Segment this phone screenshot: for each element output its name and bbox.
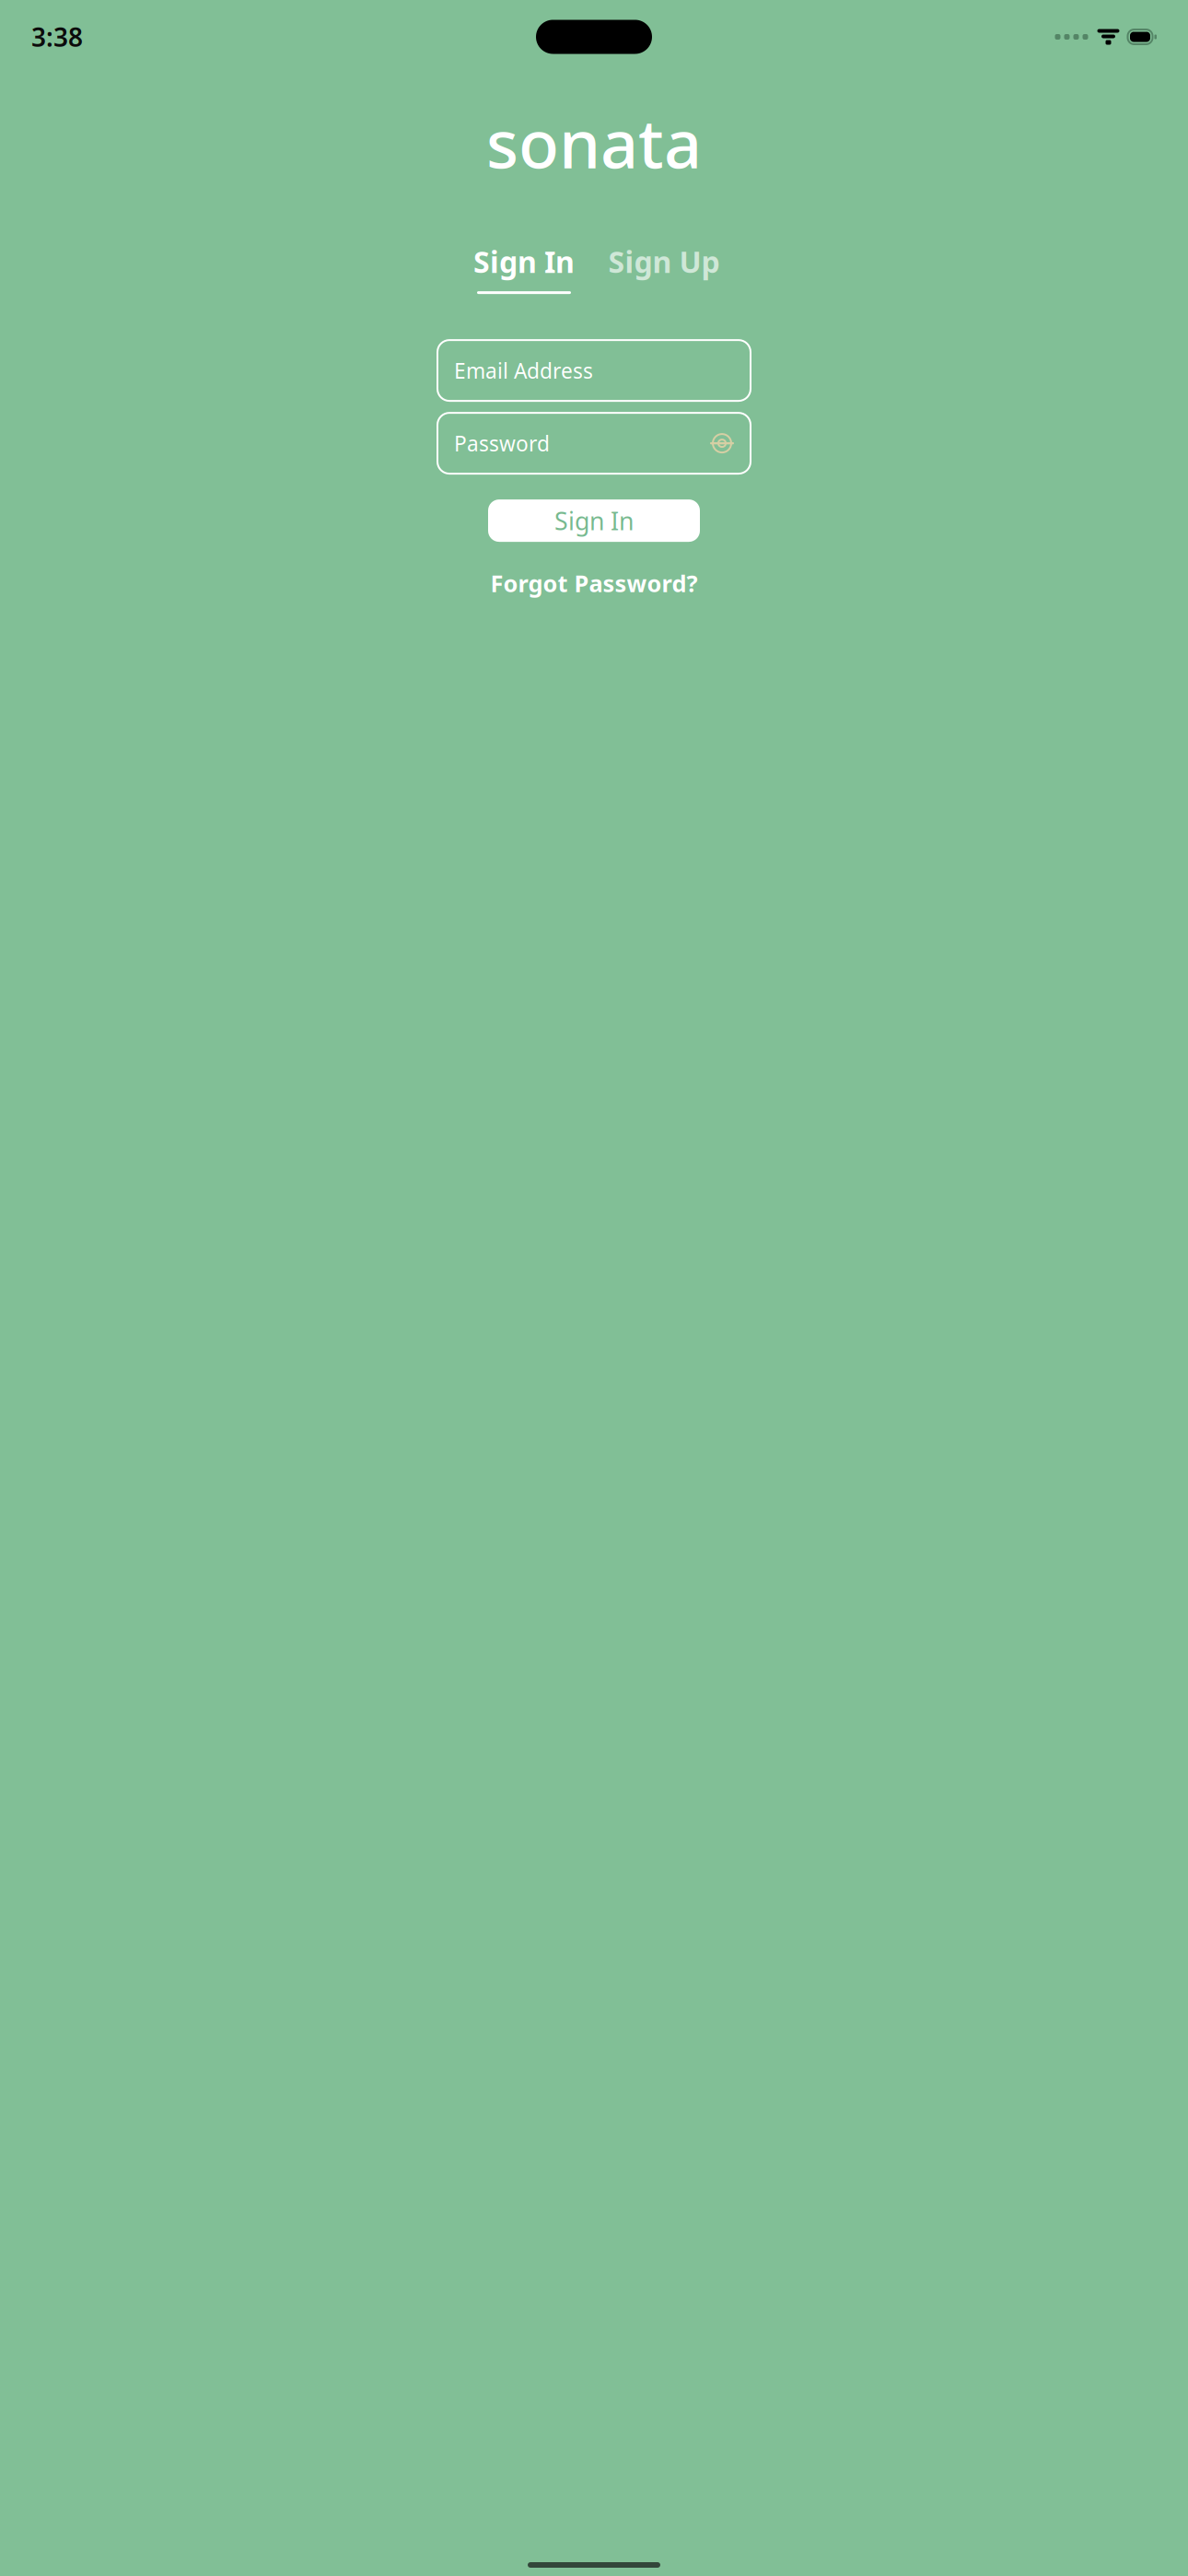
button[interactable]: Password bbox=[437, 413, 751, 474]
button[interactable]: Forgot Password? bbox=[478, 560, 710, 606]
button[interactable]: Email Address bbox=[437, 340, 751, 401]
staticText: Forgot Password? bbox=[490, 568, 698, 599]
staticText: Sign In bbox=[473, 242, 575, 281]
button[interactable]: Sign In bbox=[488, 499, 700, 542]
staticText: sonata bbox=[486, 99, 702, 187]
button[interactable]: Sign Up bbox=[594, 242, 734, 294]
staticText: 3:38 bbox=[31, 20, 83, 54]
staticText: Sign Up bbox=[608, 242, 720, 281]
staticText: Sign In bbox=[554, 504, 634, 537]
staticText: Password bbox=[454, 429, 550, 457]
staticText: Email Address bbox=[454, 357, 593, 384]
button[interactable]: Sign In bbox=[454, 242, 594, 294]
